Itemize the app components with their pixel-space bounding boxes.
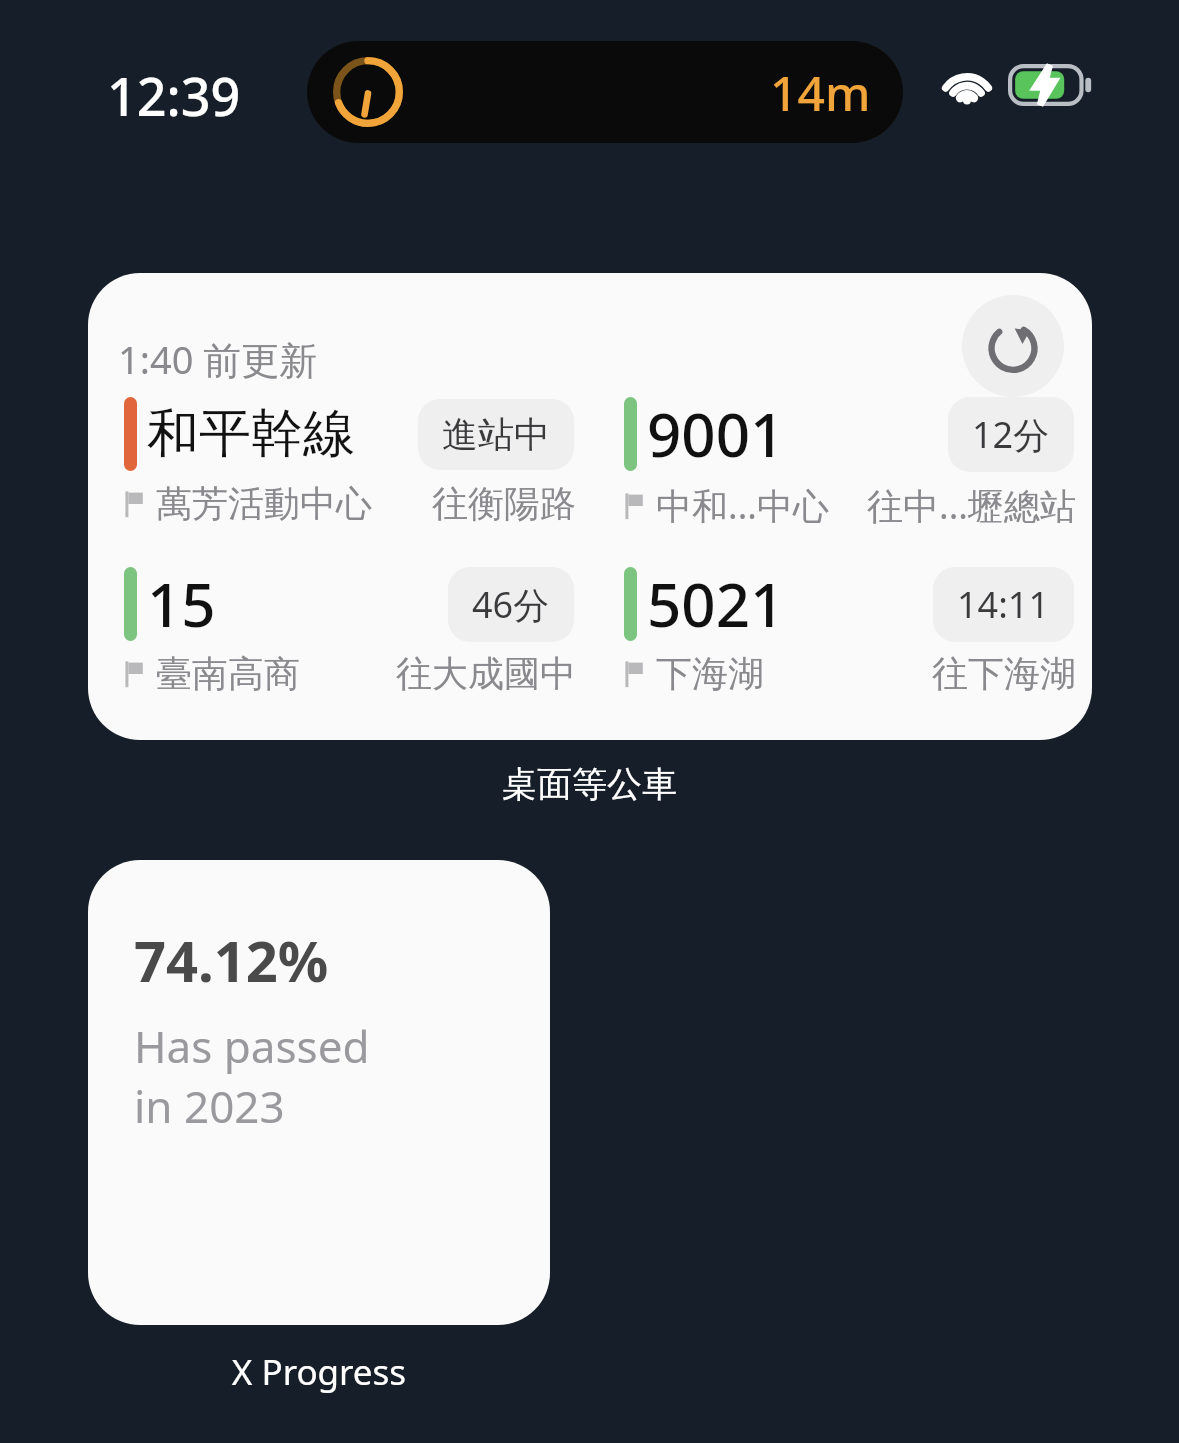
staticText: 往大成國中 bbox=[396, 651, 576, 696]
button[interactable]: Refresh bbox=[962, 295, 1064, 397]
staticText: 往衡陽路 bbox=[432, 481, 576, 526]
staticText: 進站中 bbox=[442, 412, 550, 457]
button[interactable]: 1:40 前更新 bbox=[88, 273, 1092, 740]
staticText: 14m bbox=[770, 60, 871, 125]
staticText: 5021 bbox=[647, 563, 785, 645]
staticText: 74.12% bbox=[134, 922, 329, 998]
staticText: 和平幹線 bbox=[147, 401, 355, 467]
staticText: 15 bbox=[147, 563, 216, 645]
staticText: 14:11 bbox=[957, 580, 1050, 629]
staticText: 中和...中心 bbox=[656, 481, 829, 530]
staticText: 12分 bbox=[972, 410, 1050, 459]
staticText: 46分 bbox=[472, 580, 550, 629]
button[interactable]: 14m bbox=[307, 41, 903, 143]
staticText: 往下海湖 bbox=[932, 651, 1076, 696]
staticText: 萬芳活動中心 bbox=[156, 481, 372, 526]
staticText: 9001 bbox=[647, 393, 785, 475]
staticText: 桌面等公車 bbox=[0, 762, 1179, 806]
staticText: 1:40 前更新 bbox=[118, 333, 318, 385]
staticText: Has passed bbox=[134, 1016, 370, 1076]
staticText: 往中...壢總站 bbox=[867, 481, 1076, 530]
button[interactable]: 74.12% bbox=[88, 860, 550, 1325]
staticText: 臺南高商 bbox=[156, 651, 300, 696]
staticText: 12:39 bbox=[107, 60, 241, 131]
staticText: in 2023 bbox=[134, 1076, 285, 1136]
staticText: 下海湖 bbox=[656, 651, 764, 696]
staticText: X Progress bbox=[88, 1348, 550, 1396]
